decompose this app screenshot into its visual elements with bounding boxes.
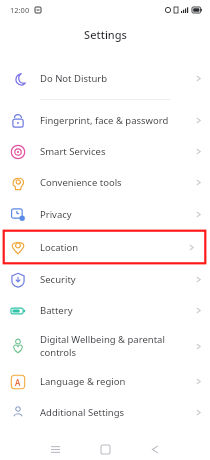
staticText: Location xyxy=(40,241,79,254)
staticText: Fingerprint, face & password xyxy=(40,114,169,127)
staticText: Settings xyxy=(84,27,127,42)
staticText: Digital Wellbeing & parental xyxy=(40,333,165,346)
staticText: Do Not Disturb xyxy=(40,72,108,85)
staticText: Additional Settings xyxy=(40,406,125,419)
button[interactable]: Back xyxy=(146,440,164,458)
button[interactable]: Home xyxy=(96,440,114,458)
staticText: Privacy xyxy=(40,208,72,221)
staticText: 12:00 xyxy=(10,5,30,15)
button[interactable]: Do Not Disturb xyxy=(0,63,210,94)
button[interactable]: Security xyxy=(0,264,210,295)
button[interactable]: Digital Wellbeing & parental xyxy=(0,326,210,366)
button[interactable]: Location xyxy=(0,230,203,264)
staticText: controls xyxy=(40,346,77,359)
button[interactable]: Privacy xyxy=(0,198,210,230)
button[interactable]: Battery xyxy=(0,295,210,326)
button[interactable]: Recent apps xyxy=(46,440,64,458)
button[interactable]: A xyxy=(0,366,210,397)
button[interactable]: Fingerprint, face & password xyxy=(0,105,210,136)
staticText: Language & region xyxy=(40,375,126,388)
staticText: Smart Services xyxy=(40,145,106,158)
staticText: Security xyxy=(40,273,76,286)
button[interactable]: Convenience tools xyxy=(0,167,210,198)
button[interactable]: Additional Settings xyxy=(0,397,210,428)
staticText: Convenience tools xyxy=(40,176,122,189)
staticText: Battery xyxy=(40,304,73,317)
staticText: A xyxy=(15,377,21,388)
button[interactable]: Smart Services xyxy=(0,136,210,167)
